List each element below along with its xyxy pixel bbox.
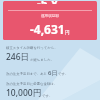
staticText: です。 bbox=[58, 72, 69, 76]
staticText: 246日 bbox=[6, 51, 30, 63]
staticText: 次の注文予定日に必要な金額は、 bbox=[6, 82, 58, 86]
staticText: 運用収益額 bbox=[41, 14, 59, 19]
staticText: 10,000円 bbox=[6, 87, 42, 99]
staticText: 円 bbox=[65, 30, 70, 36]
staticText: 積立スタイル診断を行ってから、 bbox=[6, 46, 58, 50]
staticText: -5.8 bbox=[37, 1, 58, 4]
button[interactable]: -5.8 bbox=[3, 1, 97, 40]
staticText: が経ちました。 bbox=[30, 58, 55, 62]
staticText: 次の注文予定日まで、あと bbox=[6, 72, 48, 76]
staticText: です。 bbox=[42, 94, 53, 98]
staticText: -4,631 bbox=[30, 21, 65, 37]
staticText: 6日 bbox=[48, 69, 58, 77]
